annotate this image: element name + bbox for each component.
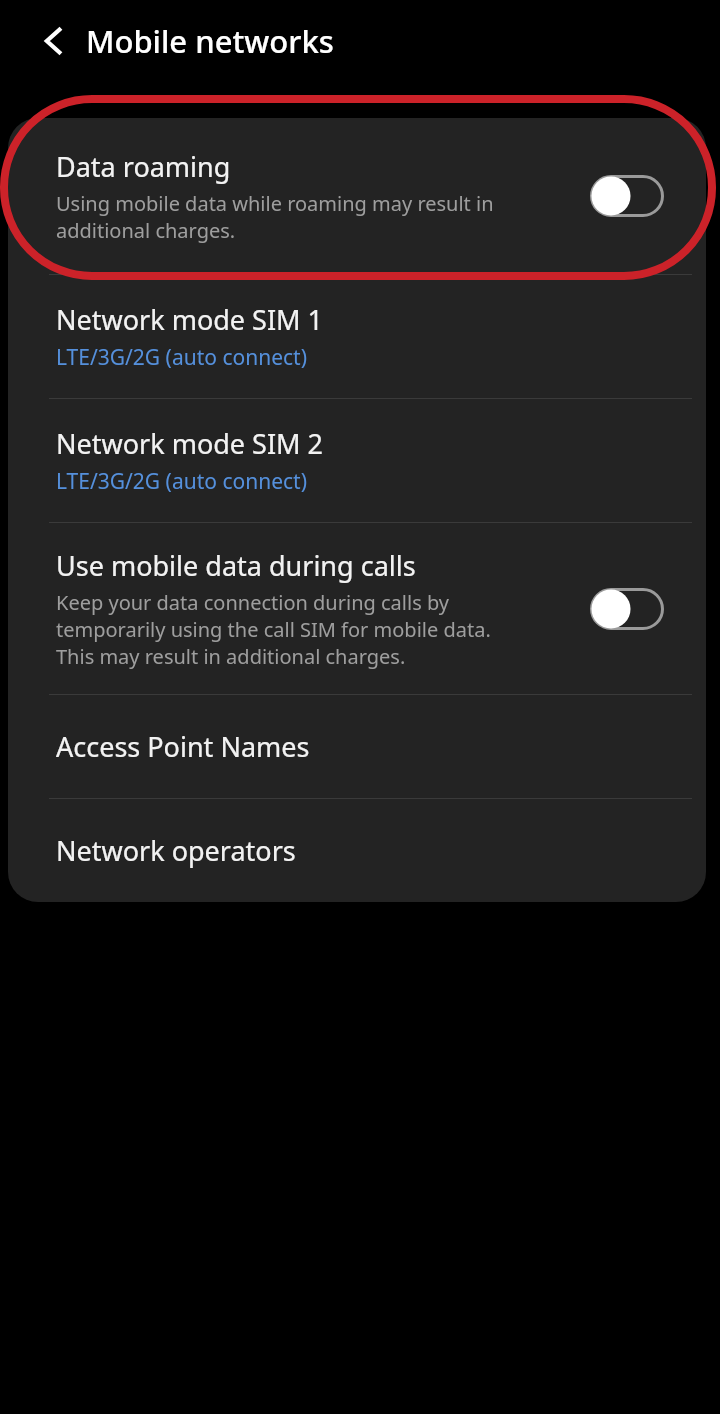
staticText: Mobile networks [86,20,334,62]
button[interactable]: Access Point Names [8,695,706,798]
button[interactable]: Toggle switch, off [588,173,666,219]
staticText: Network mode SIM 1 [56,301,324,338]
staticText: LTE/3G/2G (auto connect) [56,343,307,372]
button[interactable]: Data roaming [8,118,706,274]
button[interactable]: Toggle switch, off [588,586,666,632]
staticText: Access Point Names [56,728,310,765]
staticText: Using mobile data while roaming may resu… [56,190,494,244]
button[interactable]: Use mobile data during calls [8,523,706,694]
staticText: Network mode SIM 2 [56,425,324,462]
staticText: Network operators [56,832,296,869]
staticText: Use mobile data during calls [56,547,416,584]
button[interactable]: Network mode SIM 2 [8,399,706,522]
staticText: LTE/3G/2G (auto connect) [56,467,307,496]
button[interactable]: Network mode SIM 1 [8,275,706,398]
staticText: Data roaming [56,148,231,185]
button[interactable]: Back [26,13,82,69]
staticText: Keep your data connection during calls b… [56,589,491,670]
button[interactable]: Network operators [8,799,706,902]
